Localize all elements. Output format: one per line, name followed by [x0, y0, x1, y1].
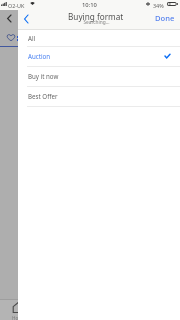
staticText: Auction — [28, 52, 51, 60]
staticText: Home — [12, 315, 26, 320]
staticText: Searching... — [83, 19, 110, 26]
staticText: Buying format — [68, 11, 124, 22]
staticText: All — [28, 34, 36, 42]
button[interactable]: Best Offer — [18, 86, 180, 105]
staticText: 10:10 — [82, 1, 97, 9]
button[interactable]: All — [18, 29, 180, 47]
button[interactable]: Done — [155, 10, 175, 29]
button[interactable]: Buy it now — [18, 66, 180, 86]
staticText: O2-UK — [8, 2, 25, 9]
staticText: Best Offer — [28, 92, 58, 100]
button[interactable]: Back — [18, 11, 34, 29]
staticText: Done — [155, 13, 175, 23]
button[interactable]: Auction — [18, 46, 180, 66]
staticText: 34% — [153, 2, 164, 9]
staticText: Buy it now — [28, 72, 59, 80]
